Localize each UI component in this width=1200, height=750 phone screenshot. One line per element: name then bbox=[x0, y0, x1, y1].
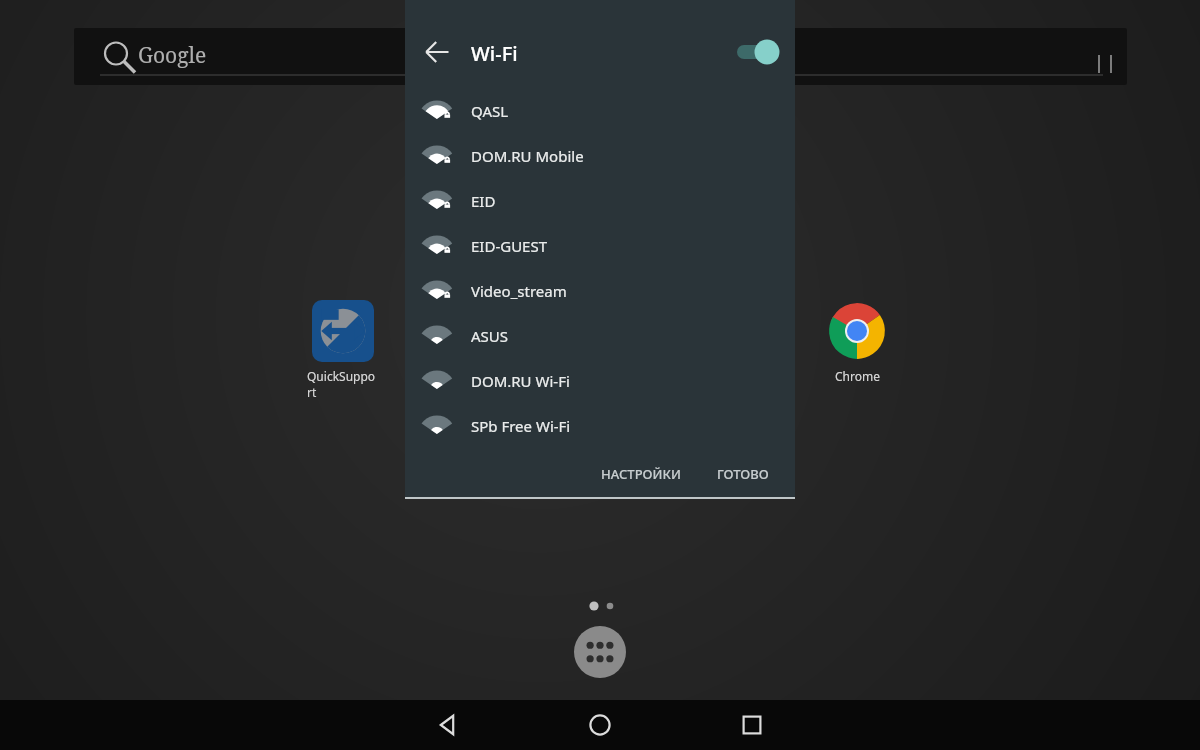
staticText: QuickSupport bbox=[307, 368, 379, 400]
staticText: SPb Free Wi-Fi bbox=[471, 416, 571, 436]
staticText: Chrome bbox=[835, 368, 880, 384]
staticText: Video_stream bbox=[471, 281, 567, 301]
staticText: Wi-Fi bbox=[471, 40, 518, 67]
button[interactable]: QASL bbox=[405, 88, 795, 133]
button[interactable]: EID-GUEST bbox=[405, 223, 795, 268]
staticText: DOM.RU Wi-Fi bbox=[471, 371, 570, 391]
button[interactable]: Chrome bbox=[821, 300, 893, 384]
button[interactable]: Back bbox=[428, 705, 468, 745]
button[interactable]: Back bbox=[419, 34, 455, 70]
staticText: НАСТРОЙКИ bbox=[601, 465, 681, 483]
staticText: EID bbox=[471, 191, 496, 211]
staticText: ГОТОВО bbox=[717, 465, 769, 483]
button[interactable]: All apps bbox=[574, 626, 626, 678]
button[interactable]: Home bbox=[580, 705, 620, 745]
staticText: DOM.RU Mobile bbox=[471, 146, 584, 166]
button[interactable]: QuickSupport bbox=[307, 300, 379, 400]
button[interactable]: SPb Free Wi-Fi bbox=[405, 403, 795, 448]
button[interactable]: ASUS bbox=[405, 313, 795, 358]
staticText: ASUS bbox=[471, 326, 509, 346]
button[interactable]: Recent apps bbox=[732, 705, 772, 745]
button[interactable]: Video_stream bbox=[405, 268, 795, 313]
button[interactable]: НАСТРОЙКИ bbox=[591, 455, 691, 493]
staticText: QASL bbox=[471, 101, 509, 121]
button[interactable]: EID bbox=[405, 178, 795, 223]
button[interactable]: Wi-Fi on bbox=[735, 37, 783, 67]
staticText: EID-GUEST bbox=[471, 236, 548, 256]
button[interactable]: DOM.RU Mobile bbox=[405, 133, 795, 178]
button[interactable]: ГОТОВО bbox=[707, 455, 779, 493]
button[interactable]: DOM.RU Wi-Fi bbox=[405, 358, 795, 403]
button[interactable]: Google bbox=[74, 28, 1127, 85]
staticText: Google bbox=[138, 41, 207, 70]
